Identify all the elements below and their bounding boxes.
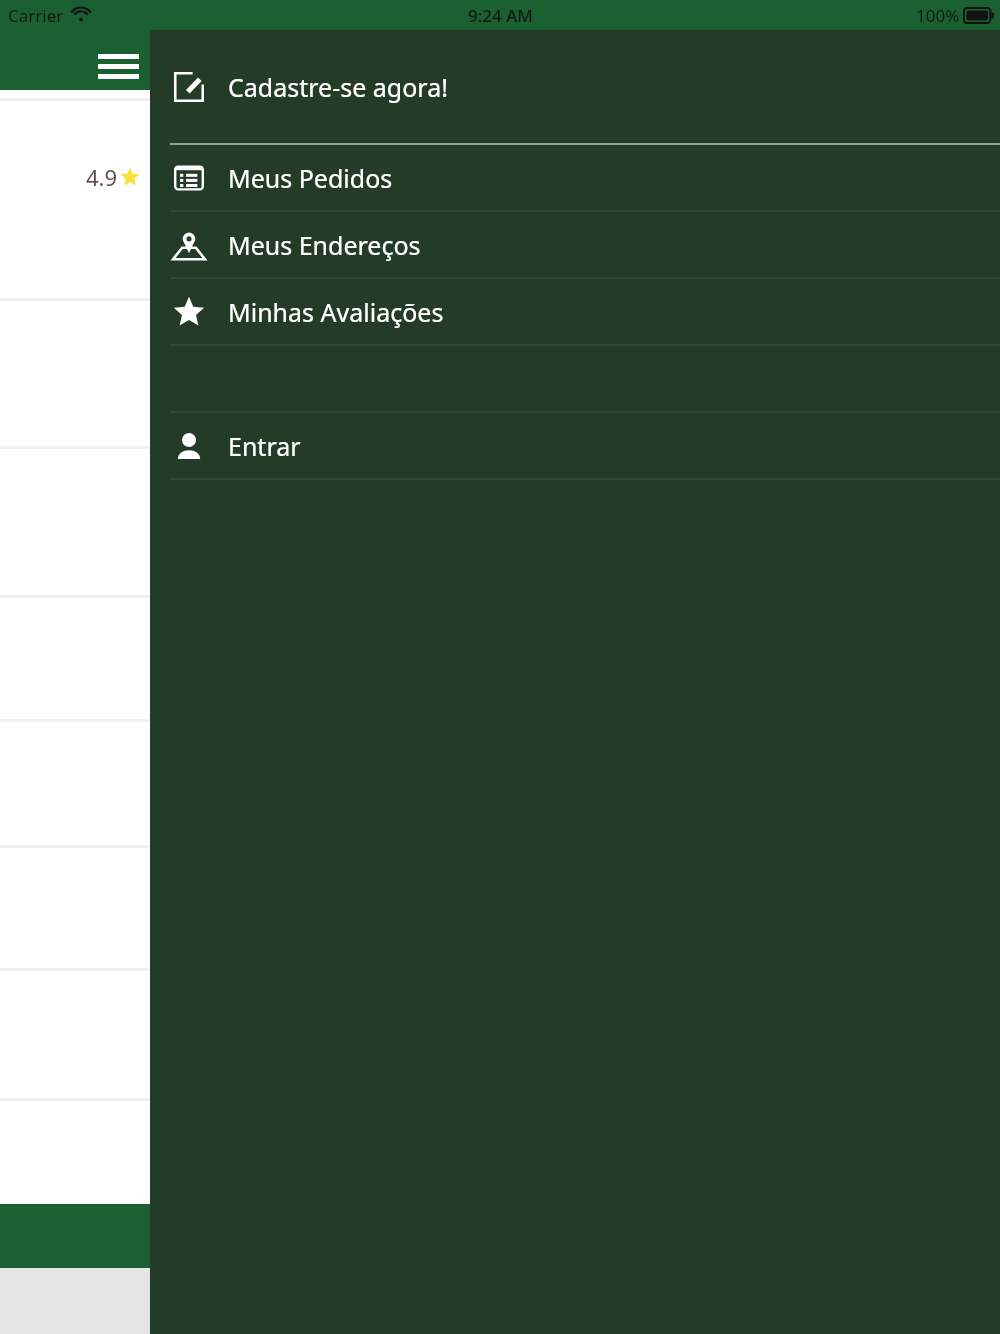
staticText: 9:24 AM	[468, 4, 533, 27]
button[interactable]: Meus Pedidos	[150, 145, 1000, 210]
button[interactable]: Cadastre-se agora!	[150, 30, 1000, 143]
staticText: Carrier	[8, 4, 64, 27]
button[interactable]: 4.9	[86, 162, 140, 192]
button[interactable]: Menu	[88, 30, 148, 90]
staticText: Minhas Avaliações	[228, 295, 444, 329]
staticText: Entrar	[228, 429, 301, 463]
staticText: 100%	[916, 4, 960, 27]
button[interactable]: Entrar	[150, 413, 1000, 478]
staticText: 4.9	[86, 162, 118, 192]
button[interactable]: Minhas Avaliações	[150, 279, 1000, 344]
button[interactable]: Meus Endereços	[150, 212, 1000, 277]
staticText: Meus Endereços	[228, 228, 421, 262]
staticText: Cadastre-se agora!	[228, 70, 448, 104]
staticText: Meus Pedidos	[228, 161, 393, 195]
